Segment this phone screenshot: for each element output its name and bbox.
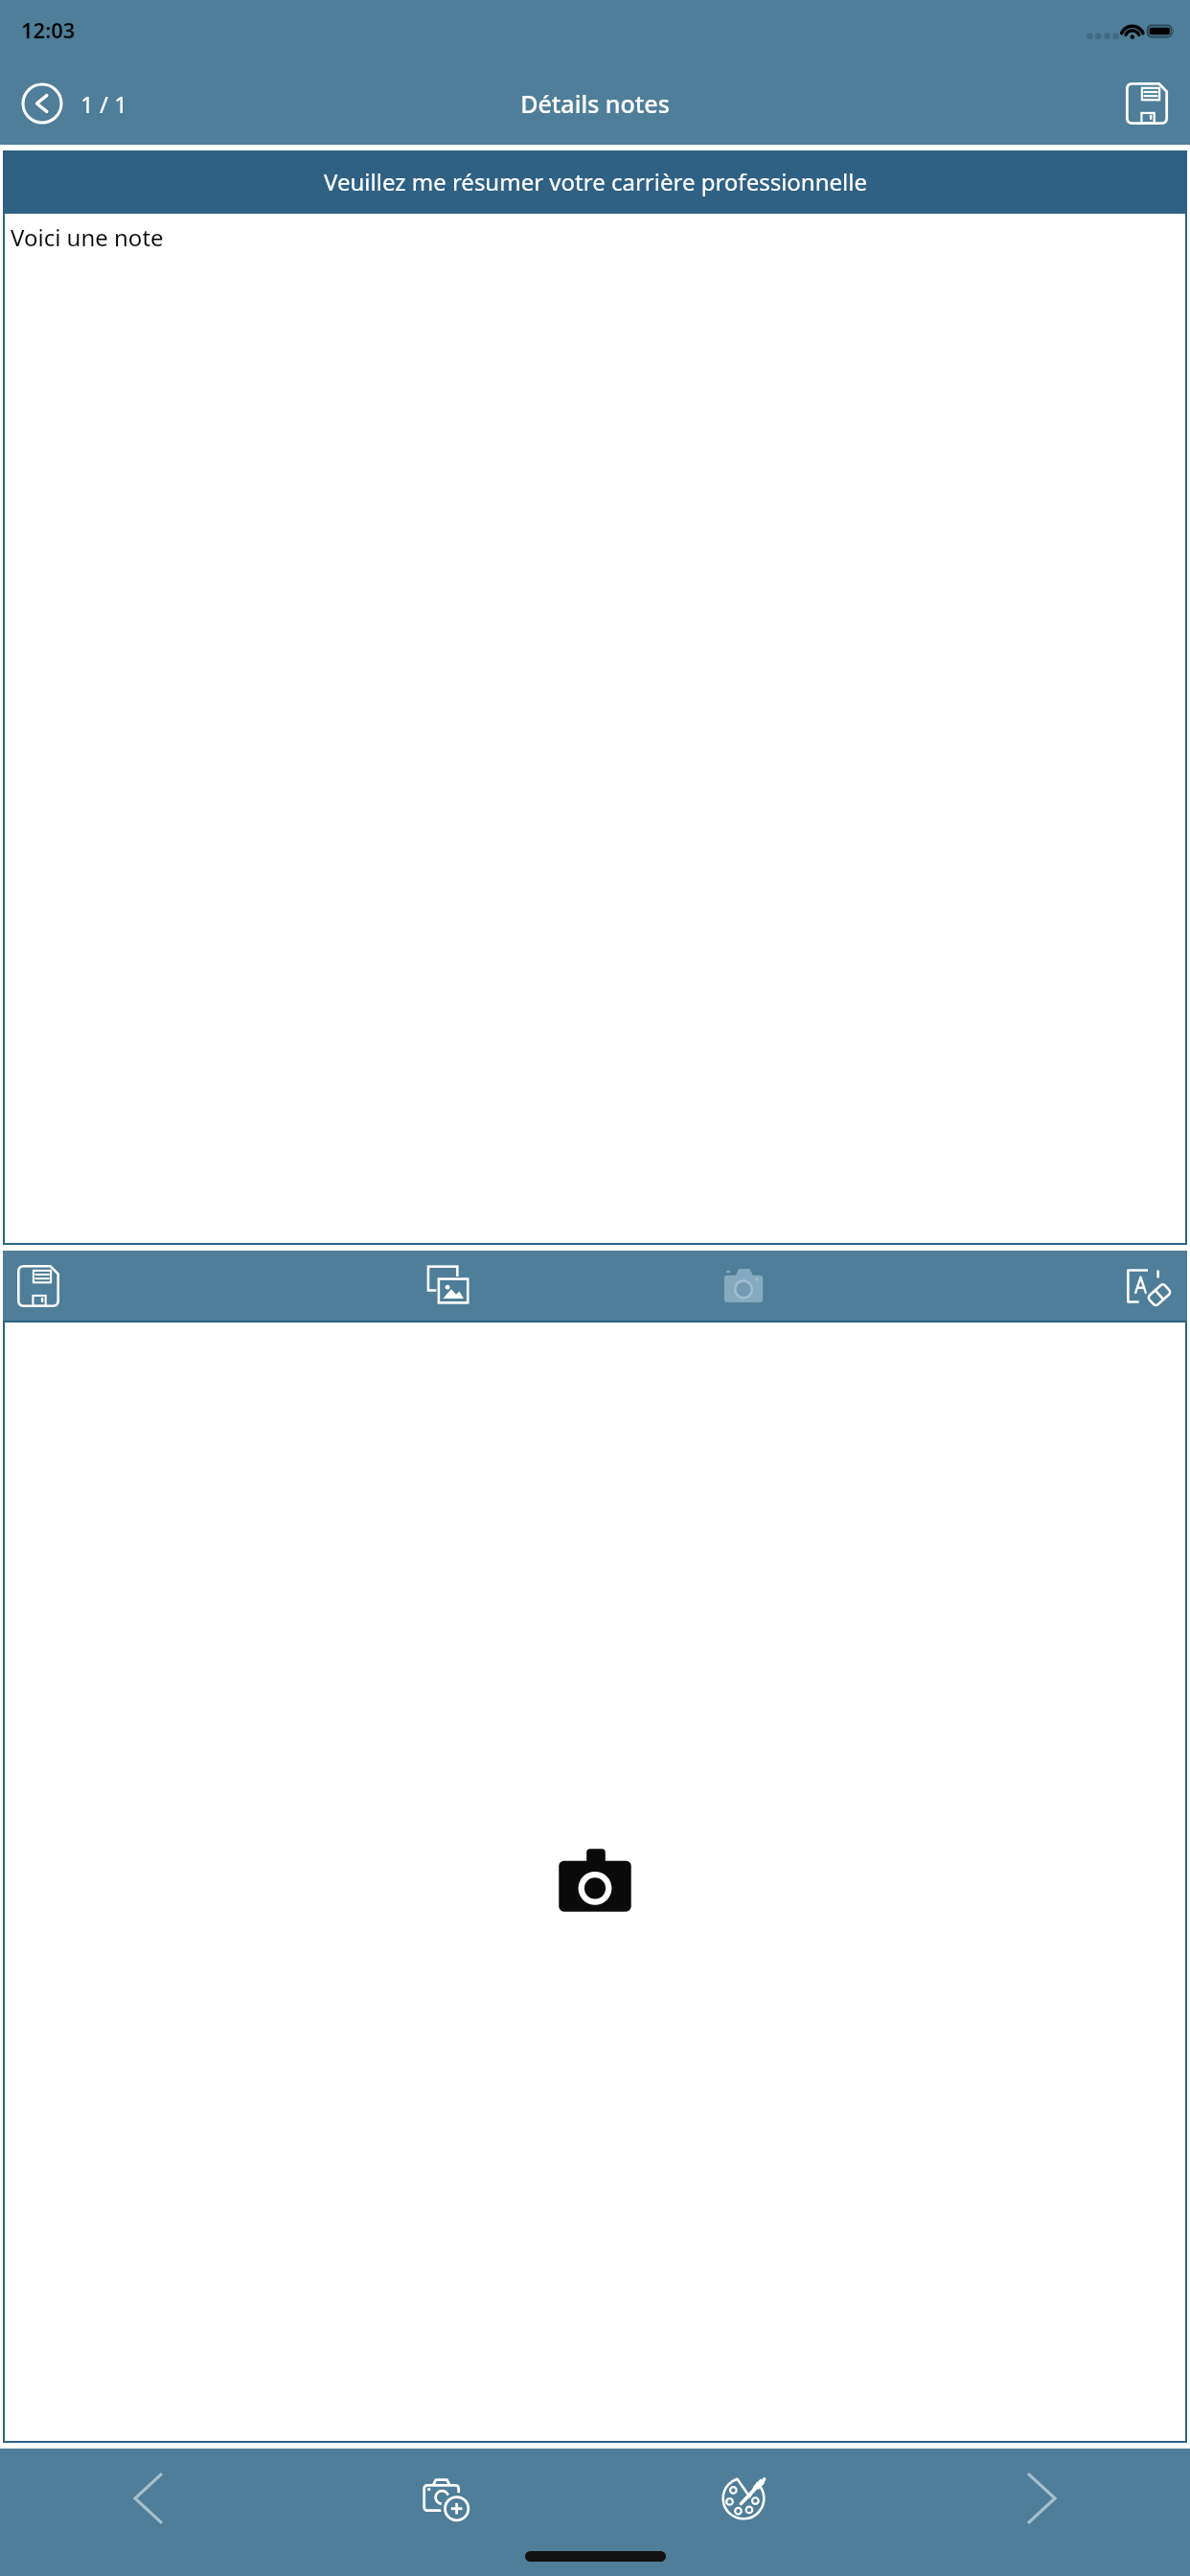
button[interactable]: Next [892, 2449, 1190, 2548]
other: Add photo [551, 1838, 639, 1926]
button[interactable]: Save [1117, 74, 1177, 133]
button[interactable]: Annotate [891, 1251, 1187, 1321]
button[interactable]: Voici une note [3, 212, 1187, 1245]
staticText: 12:03 [21, 15, 76, 44]
button[interactable]: Add photo [297, 2449, 594, 2548]
button[interactable]: Save note [3, 1251, 299, 1321]
staticText: Voici une note [11, 221, 164, 253]
button[interactable]: Take photo [595, 1251, 891, 1321]
staticText: Veuillez me résumer votre carrière profe… [324, 166, 867, 197]
button[interactable]: Draw [594, 2449, 892, 2548]
button[interactable]: Add photo [3, 1321, 1187, 2443]
staticText: Détails notes [520, 87, 670, 120]
button[interactable]: Previous [0, 2449, 297, 2548]
button[interactable]: Pick from gallery [299, 1251, 595, 1321]
button[interactable]: Back [15, 77, 69, 130]
staticText: 1 / 1 [80, 88, 127, 120]
